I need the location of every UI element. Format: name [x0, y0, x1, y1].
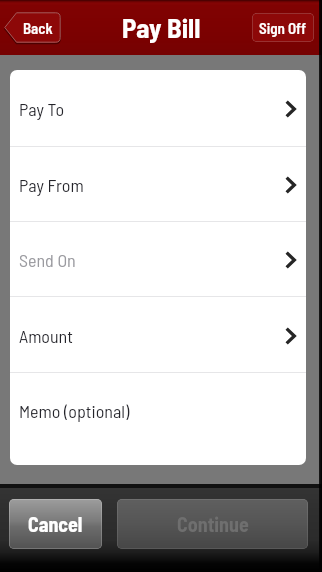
button[interactable]: Back [4, 12, 61, 43]
button[interactable]: Cancel [9, 499, 102, 549]
staticText: Back [23, 19, 53, 37]
button[interactable]: Send On [10, 222, 306, 296]
staticText: Memo (optional) [19, 400, 130, 422]
button[interactable]: Pay To [10, 70, 306, 146]
staticText: Sign Off [259, 19, 307, 37]
button[interactable]: Sign Off [252, 13, 314, 42]
staticText: Cancel [28, 512, 83, 536]
staticText: Amount [19, 325, 73, 347]
button[interactable]: Memo (optional) [10, 373, 306, 447]
staticText: Pay To [19, 98, 65, 120]
staticText: Pay From [19, 174, 84, 196]
staticText: Send On [19, 249, 76, 271]
staticText: Pay Bill [122, 11, 201, 43]
button[interactable]: Pay From [10, 147, 306, 221]
button[interactable]: Amount [10, 297, 306, 372]
button[interactable]: Continue [117, 499, 308, 549]
staticText: Continue [177, 512, 249, 536]
